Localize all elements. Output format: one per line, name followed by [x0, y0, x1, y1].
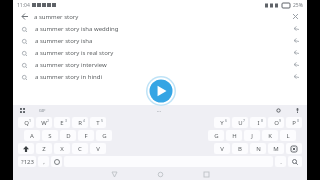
button[interactable]: K [262, 130, 278, 141]
staticText: 11:04 [17, 2, 30, 9]
staticText: Z [42, 145, 46, 153]
staticText: a summer story is real story [35, 49, 114, 57]
button[interactable]: Z [36, 143, 52, 154]
button[interactable]: a summer story in hindi [13, 71, 307, 83]
button[interactable]: . [275, 156, 286, 167]
staticText: a summer story [34, 13, 79, 21]
button[interactable]: M [268, 143, 284, 154]
staticText: 8 [261, 118, 264, 123]
button[interactable]: P [286, 117, 302, 128]
button[interactable]: , [38, 156, 49, 167]
staticText: T [96, 119, 100, 127]
staticText: ?123 [21, 158, 34, 166]
staticText: a summer story interview [35, 61, 107, 69]
staticText: O [274, 119, 279, 127]
staticText: V [96, 145, 100, 153]
button[interactable]: Insert [291, 36, 301, 46]
button[interactable]: a summer story isha [13, 35, 307, 47]
button[interactable]: X [54, 143, 70, 154]
staticText: 25% [293, 2, 303, 9]
staticText: E [60, 119, 64, 127]
button[interactable]: R [72, 117, 88, 128]
button[interactable]: T [90, 117, 106, 128]
staticText: a summer story isha [35, 37, 93, 45]
staticText: , [43, 158, 45, 166]
staticText: V [220, 145, 224, 153]
button[interactable]: Y [214, 117, 230, 128]
button[interactable]: Home [150, 169, 170, 180]
staticText: C [78, 145, 82, 153]
button[interactable]: Voice input [293, 106, 302, 115]
button[interactable]: Play [146, 76, 176, 106]
button[interactable]: Insert [291, 72, 301, 82]
button[interactable]: S [42, 130, 58, 141]
button[interactable]: A [24, 130, 40, 141]
button[interactable]: G [208, 130, 224, 141]
button[interactable]: J [244, 130, 260, 141]
button[interactable]: L [280, 130, 296, 141]
button[interactable]: Insert [291, 24, 301, 34]
button[interactable]: Search [288, 156, 302, 167]
button[interactable]: V [90, 143, 106, 154]
button[interactable]: Backspace [286, 143, 302, 154]
button[interactable]: W [36, 117, 52, 128]
button[interactable]: Apps [18, 106, 27, 115]
staticText: W [41, 119, 47, 127]
staticText: 4 [83, 118, 86, 123]
staticText: I [257, 119, 260, 127]
button[interactable]: a summer story isha wedding [13, 23, 307, 35]
button[interactable]: Settings [274, 106, 283, 115]
staticText: . [280, 158, 282, 166]
staticText: L [286, 132, 290, 140]
staticText: R [78, 119, 82, 127]
staticText: a summer story isha wedding [35, 25, 119, 33]
button[interactable]: Insert [291, 48, 301, 58]
button[interactable]: Back [19, 11, 30, 22]
button[interactable]: ?123 [18, 156, 36, 167]
button[interactable]: N [250, 143, 266, 154]
button[interactable]: Clear [290, 11, 301, 22]
button[interactable]: Q [18, 117, 34, 128]
button[interactable]: V [214, 143, 230, 154]
staticText: 1 [29, 118, 32, 123]
staticText: 0 [297, 118, 300, 123]
staticText: P [292, 119, 296, 127]
button[interactable]: G [96, 130, 112, 141]
staticText: B [238, 145, 242, 153]
button[interactable]: H [226, 130, 242, 141]
staticText: D [66, 132, 71, 140]
staticText: X [60, 145, 64, 153]
button[interactable]: B [232, 143, 248, 154]
staticText: 2 [47, 118, 50, 123]
staticText: J [251, 132, 253, 140]
button[interactable]: Recents [196, 169, 216, 180]
button[interactable]: Shift [18, 143, 34, 154]
staticText: 3 [65, 118, 68, 123]
staticText: Q [24, 119, 29, 127]
staticText: G [214, 132, 219, 140]
button[interactable]: a summer story interview [13, 59, 307, 71]
button[interactable]: C [72, 143, 88, 154]
button[interactable]: Back [104, 169, 124, 180]
staticText: S [48, 132, 52, 140]
button[interactable]: D [60, 130, 76, 141]
staticText: G [102, 132, 107, 140]
staticText: 6 [225, 118, 228, 123]
staticText: GIF [39, 108, 46, 113]
staticText: H [232, 132, 237, 140]
staticText: K [268, 132, 272, 140]
staticText: 7 [243, 118, 246, 123]
staticText: N [256, 145, 261, 153]
staticText: ... [157, 107, 162, 114]
staticText: 5 [101, 118, 104, 123]
button[interactable]: a summer story is real story [13, 47, 307, 59]
button[interactable]: U [232, 117, 248, 128]
button[interactable]: Emoji [51, 156, 62, 167]
button[interactable]: I [250, 117, 266, 128]
button[interactable]: E [54, 117, 70, 128]
button[interactable]: F [78, 130, 94, 141]
staticText: A [30, 132, 34, 140]
button[interactable]: O [268, 117, 284, 128]
button[interactable]: Insert [291, 60, 301, 70]
